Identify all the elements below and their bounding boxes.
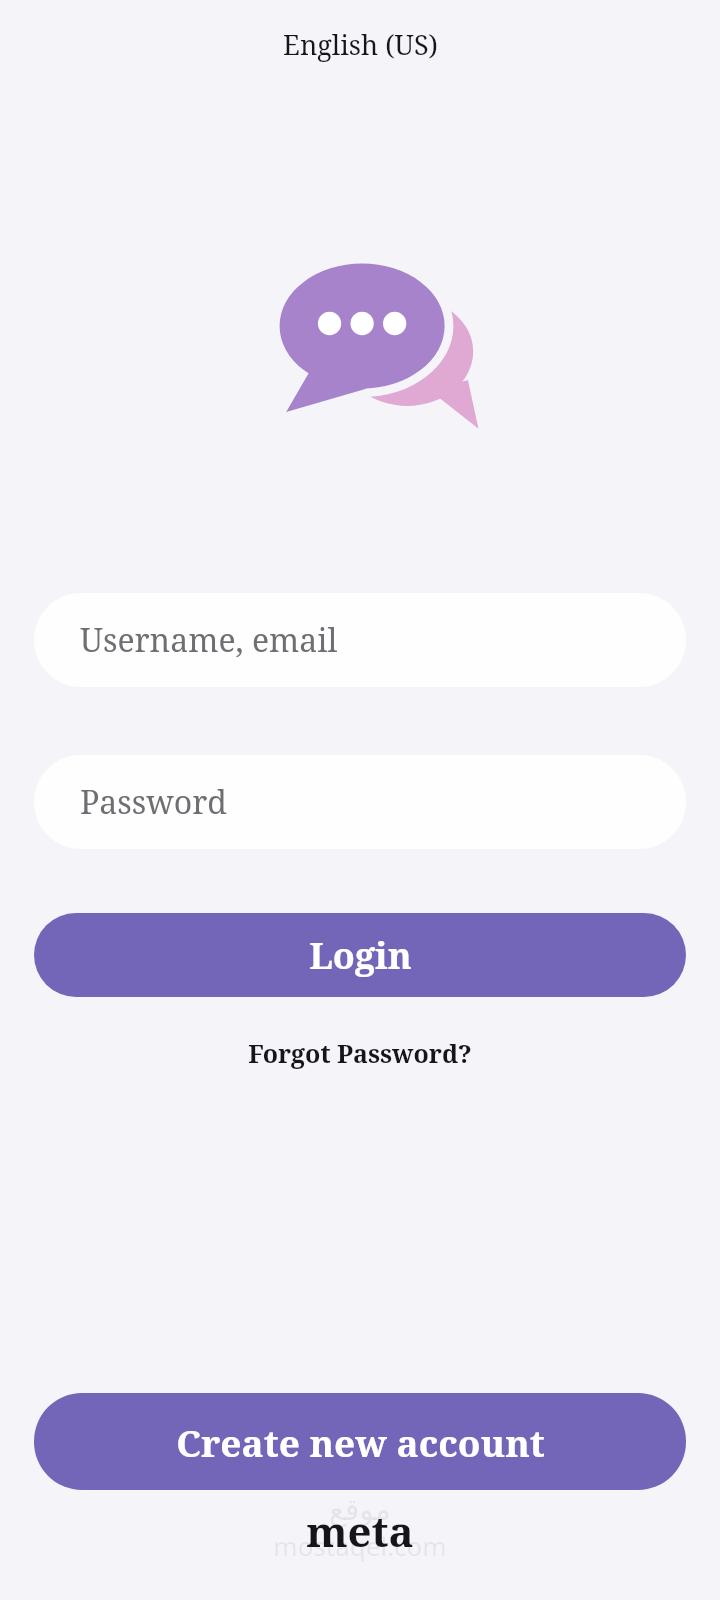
staticText: mostaqel.com [273,1528,447,1563]
button[interactable]: Forgot Password? [236,1030,484,1076]
button[interactable]: Create new account [34,1393,686,1490]
button[interactable]: English (US) [273,22,448,67]
staticText: موقع [329,1492,391,1527]
staticText: meta [306,1502,414,1559]
button[interactable]: Username, email [34,593,686,687]
staticText: Create new account [176,1417,545,1467]
staticText: Password [80,780,227,824]
staticText: Forgot Password? [248,1036,472,1070]
staticText: English (US) [283,26,438,63]
staticText: Username, email [80,618,338,662]
staticText: Login [309,931,412,980]
button[interactable]: Password [34,755,686,849]
button[interactable]: Login [34,913,686,997]
